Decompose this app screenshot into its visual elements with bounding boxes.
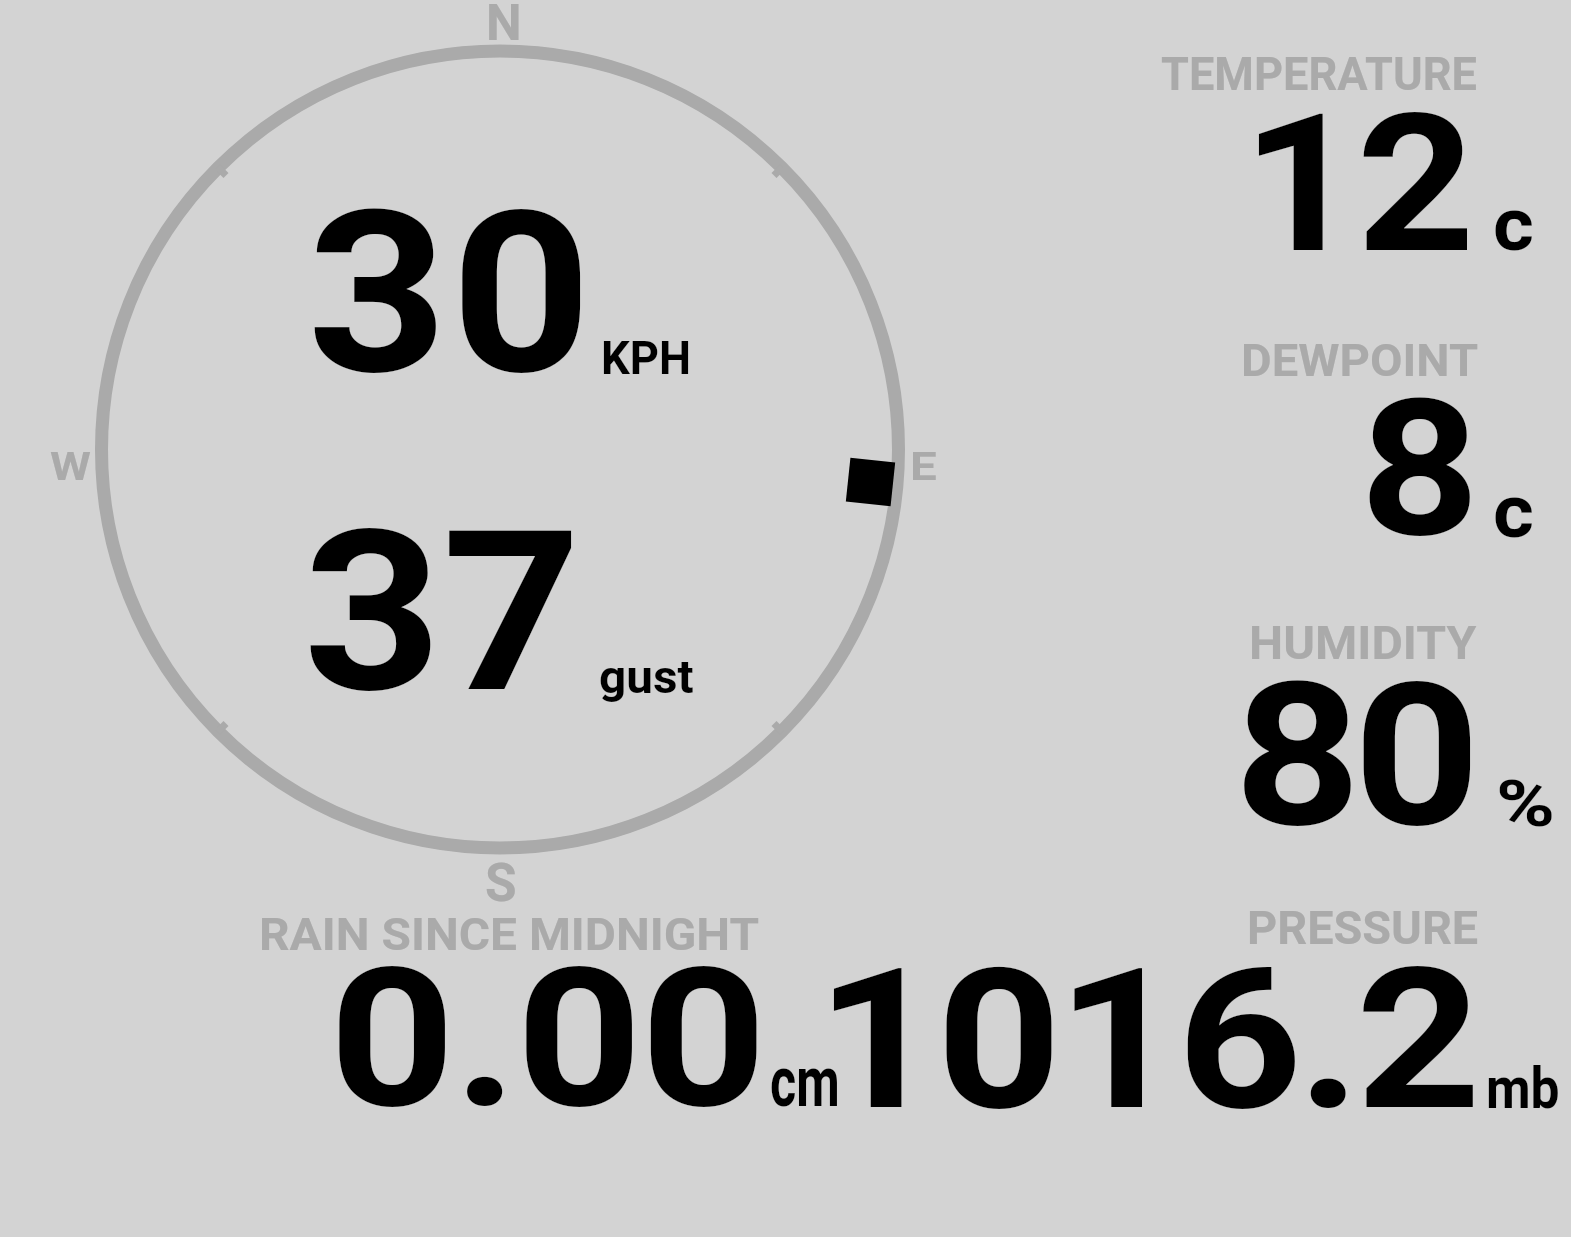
staticText: 0.00 <box>329 926 766 1152</box>
staticText: 80 <box>1234 640 1474 872</box>
staticText: 1016.2 <box>816 926 1477 1155</box>
staticText: HUMIDITY <box>1249 617 1477 670</box>
staticText: % <box>1496 767 1556 842</box>
staticText: cm <box>770 1040 840 1123</box>
staticText: mb <box>1486 1054 1560 1122</box>
button[interactable]: Wind direction, east <box>846 458 895 506</box>
staticText: RAIN SINCE MIDNIGHT <box>259 908 760 961</box>
staticText: 37 <box>303 483 582 744</box>
staticText: W <box>50 445 92 490</box>
staticText: 8 <box>1360 358 1480 580</box>
staticText: 12 <box>1242 73 1471 297</box>
staticText: c <box>1493 468 1534 555</box>
button[interactable]: Humidity 80 percent <box>1140 610 1565 840</box>
staticText: PRESSURE <box>1247 901 1478 956</box>
staticText: S <box>485 851 517 914</box>
staticText: DEWPOINT <box>1241 334 1479 387</box>
staticText: TEMPERATURE <box>1161 47 1477 101</box>
staticText: gust <box>599 649 694 704</box>
staticText: 30 <box>307 162 595 426</box>
staticText: N <box>486 0 522 52</box>
staticText: E <box>910 445 937 490</box>
staticText: c <box>1493 181 1534 268</box>
button[interactable]: Temperature 12 C <box>1140 40 1565 265</box>
staticText: KPH <box>601 331 692 385</box>
button[interactable]: Rain since midnight 0.00 cm <box>250 900 850 1120</box>
button[interactable]: Wind speed 30 KPH, gusting 37 <box>95 45 905 855</box>
button[interactable]: Dewpoint 8 C <box>1140 325 1565 550</box>
button[interactable]: Pressure 1016.2 mb <box>860 900 1565 1120</box>
